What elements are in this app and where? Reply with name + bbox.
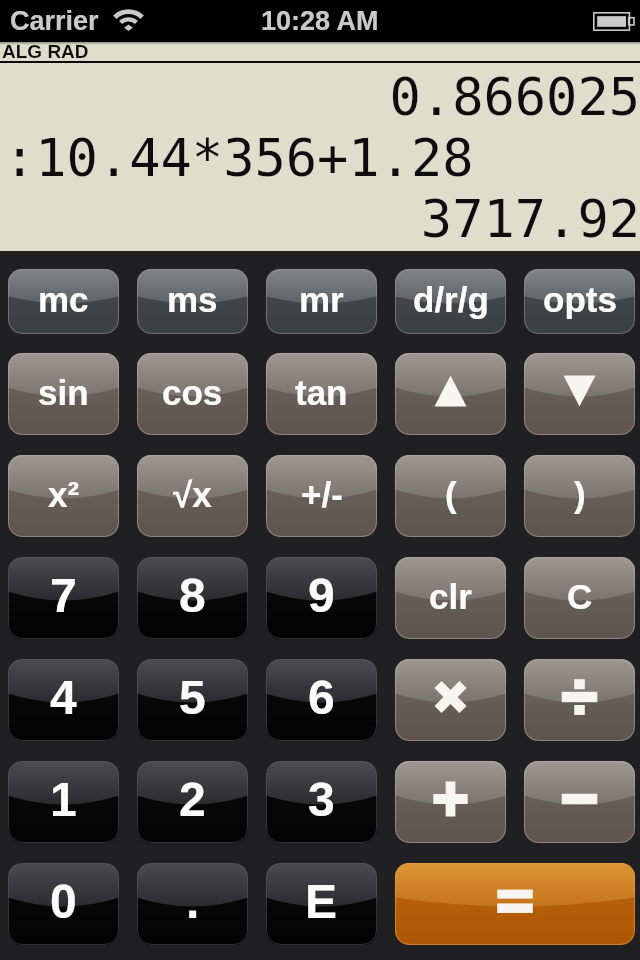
button[interactable]: clr <box>395 557 506 639</box>
button[interactable]: mr <box>266 269 377 334</box>
button[interactable]: Scroll down <box>524 353 635 435</box>
staticText: 8 <box>179 569 206 623</box>
button[interactable]: ( <box>395 455 506 537</box>
button[interactable]: C <box>524 557 635 639</box>
staticText: opts <box>543 280 617 319</box>
staticText: 3 <box>308 773 335 827</box>
button[interactable]: mc <box>8 269 119 334</box>
staticText: mc <box>38 280 89 319</box>
staticText: Carrier <box>10 6 99 36</box>
staticText: 5 <box>179 671 206 725</box>
button[interactable]: +/- <box>266 455 377 537</box>
button[interactable]: . <box>137 863 248 945</box>
button[interactable]: ms <box>137 269 248 334</box>
button[interactable]: 5 <box>137 659 248 741</box>
button[interactable]: Multiply <box>395 659 506 741</box>
staticText: 6 <box>308 671 335 725</box>
button[interactable]: Plus <box>395 761 506 843</box>
staticText: 4 <box>50 671 77 725</box>
staticText: 9 <box>308 569 335 623</box>
staticText: ms <box>167 280 218 319</box>
button[interactable]: 6 <box>266 659 377 741</box>
button[interactable]: Minus <box>524 761 635 843</box>
button[interactable]: 1 <box>8 761 119 843</box>
staticText: sin <box>38 373 89 412</box>
button[interactable]: E <box>266 863 377 945</box>
staticText: 0 <box>50 875 77 929</box>
button[interactable]: d/r/g <box>395 269 506 334</box>
staticText: ( <box>445 475 457 514</box>
button[interactable]: Equals <box>395 863 635 945</box>
button[interactable]: 7 <box>8 557 119 639</box>
staticText: 7 <box>50 569 77 623</box>
button[interactable]: 9 <box>266 557 377 639</box>
staticText: C <box>567 577 593 616</box>
staticText: √x <box>173 475 212 514</box>
button[interactable]: x² <box>8 455 119 537</box>
button[interactable]: 8 <box>137 557 248 639</box>
button[interactable]: 3 <box>266 761 377 843</box>
button[interactable]: opts <box>524 269 635 334</box>
staticText: 10:28 AM <box>261 6 379 36</box>
button[interactable]: sin <box>8 353 119 435</box>
button[interactable]: Scroll up <box>395 353 506 435</box>
staticText: E <box>305 875 338 929</box>
staticText: 2 <box>179 773 206 827</box>
button[interactable]: 4 <box>8 659 119 741</box>
staticText: ALG RAD <box>2 41 89 62</box>
staticText: clr <box>429 577 472 616</box>
staticText: cos <box>162 373 223 412</box>
staticText: mr <box>299 280 344 319</box>
button[interactable]: 0 <box>8 863 119 945</box>
button[interactable]: √x <box>137 455 248 537</box>
staticText: tan <box>295 373 348 412</box>
staticText: ) <box>574 475 586 514</box>
staticText: :10.44*356+1.28 <box>4 128 640 189</box>
staticText: . <box>186 875 200 929</box>
staticText: x² <box>48 475 80 514</box>
staticText: +/- <box>301 475 343 514</box>
button[interactable]: ) <box>524 455 635 537</box>
button[interactable]: 2 <box>137 761 248 843</box>
staticText: d/r/g <box>413 280 489 319</box>
button[interactable]: Divide <box>524 659 635 741</box>
button[interactable]: tan <box>266 353 377 435</box>
staticText: 3717.92 <box>4 189 640 250</box>
button[interactable]: cos <box>137 353 248 435</box>
staticText: 0.866025 <box>4 67 640 128</box>
staticText: 1 <box>50 773 77 827</box>
